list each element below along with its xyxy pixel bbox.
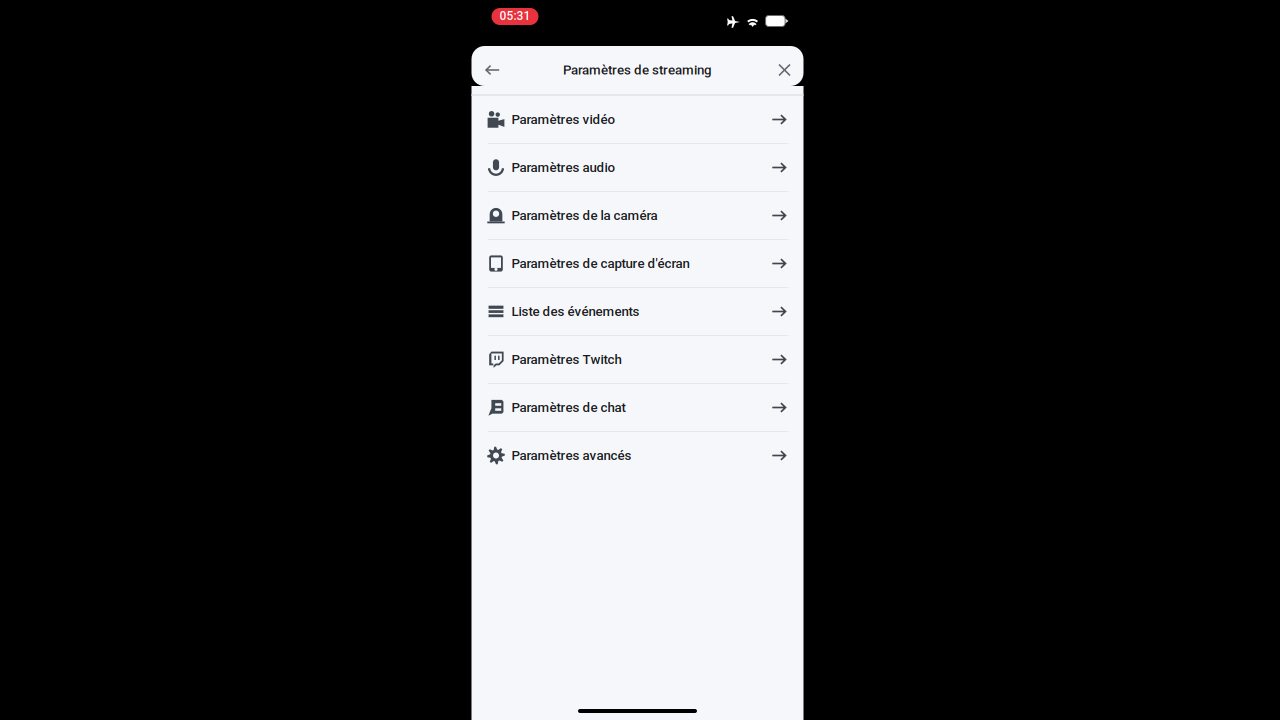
staticText: Paramètres Twitch <box>511 352 621 367</box>
staticText: Paramètres avancés <box>511 448 631 463</box>
button[interactable]: Paramètres audio <box>471 144 803 191</box>
button[interactable]: Paramètres avancés <box>471 432 803 479</box>
staticText: Paramètres de chat <box>511 400 625 415</box>
button[interactable]: Liste des événements <box>471 288 803 335</box>
staticText: 05:31 <box>499 9 530 23</box>
button[interactable]: Paramètres de la caméra <box>471 192 803 239</box>
staticText: Paramètres de la caméra <box>511 208 657 223</box>
button[interactable]: Paramètres de chat <box>471 384 803 431</box>
button[interactable]: Fermer <box>767 53 801 87</box>
staticText: Liste des événements <box>511 304 639 319</box>
staticText: Paramètres vidéo <box>511 112 615 127</box>
button[interactable]: Paramètres Twitch <box>471 336 803 383</box>
staticText: Paramètres de streaming <box>563 62 712 78</box>
button[interactable]: Paramètres vidéo <box>471 96 803 143</box>
staticText: Paramètres de capture d'écran <box>511 256 689 271</box>
button[interactable]: Retour <box>475 53 509 87</box>
staticText: Paramètres audio <box>511 160 615 175</box>
button[interactable]: Paramètres de capture d'écran <box>471 240 803 287</box>
